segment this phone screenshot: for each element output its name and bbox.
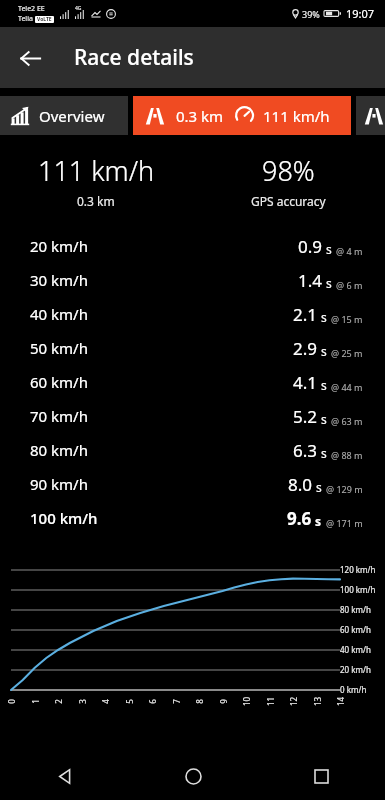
staticText: @ 6 m <box>336 279 363 291</box>
staticText: 14 <box>334 696 345 706</box>
staticText: 0.9 <box>298 235 323 258</box>
staticText: s <box>321 445 327 461</box>
staticText: s <box>326 241 332 257</box>
button[interactable]: 40 km/h <box>0 297 385 331</box>
button[interactable]: 100 km/h <box>0 501 385 535</box>
staticText: s <box>321 411 327 427</box>
button[interactable]: Overview <box>0 96 128 135</box>
staticText: 90 km/h <box>30 474 88 494</box>
staticText: 30 km/h <box>30 270 88 290</box>
button[interactable]: Back <box>8 36 52 80</box>
staticText: Telia <box>18 14 35 24</box>
staticText: 0.3 km <box>176 106 224 126</box>
staticText: 8 <box>193 696 204 706</box>
staticText: 100 km/h <box>340 584 376 595</box>
button[interactable]: Back <box>0 752 129 800</box>
staticText: @ 129 m <box>326 483 363 495</box>
staticText: @ 171 m <box>326 517 363 529</box>
staticText: 60 km/h <box>340 624 371 635</box>
staticText: 13 <box>311 696 322 706</box>
staticText: 8.0 <box>288 473 313 496</box>
staticText: 2 <box>52 696 63 706</box>
button[interactable]: 30 km/h <box>0 263 385 297</box>
staticText: 1.4 <box>298 269 323 292</box>
button[interactable]: 0.3 km <box>133 96 351 135</box>
staticText: 111 km/h <box>263 106 330 126</box>
staticText: 111 km/h <box>38 152 155 189</box>
staticText: @ 44 m <box>331 381 363 393</box>
staticText: @ 25 m <box>331 347 363 359</box>
staticText: @ 63 m <box>331 415 363 427</box>
staticText: 4G <box>75 5 82 12</box>
staticText: 11 <box>264 696 275 706</box>
staticText: 50 km/h <box>30 338 88 358</box>
staticText: 4 <box>99 696 110 706</box>
staticText: 0 <box>5 696 16 706</box>
staticText: 6 <box>146 696 157 706</box>
staticText: 5 <box>123 696 134 706</box>
staticText: Overview <box>39 106 105 126</box>
staticText: 9.6 <box>287 507 312 530</box>
staticText: 20 km/h <box>30 236 88 256</box>
staticText: 100 km/h <box>30 508 98 528</box>
staticText: 40 km/h <box>340 644 371 655</box>
staticText: 20 km/h <box>340 664 371 675</box>
button[interactable]: 80 km/h <box>0 433 385 467</box>
staticText: @ 4 m <box>336 245 363 257</box>
staticText: Race details <box>74 43 194 72</box>
staticText: @ 15 m <box>331 313 363 325</box>
staticText: s <box>321 343 327 359</box>
staticText: VoLTE <box>37 16 52 23</box>
staticText: 7 <box>170 696 181 706</box>
staticText: 98% <box>262 152 315 189</box>
button[interactable] <box>356 96 385 135</box>
staticText: 12 <box>287 696 298 706</box>
staticText: 2.1 <box>293 303 318 326</box>
staticText: 0 km/h <box>340 684 367 695</box>
staticText: 3 <box>76 696 87 706</box>
staticText: 60 km/h <box>30 372 88 392</box>
staticText: 5.2 <box>293 405 318 428</box>
staticText: 39% <box>302 8 320 20</box>
staticText: 19:07 <box>346 6 375 21</box>
button[interactable]: 90 km/h <box>0 467 385 501</box>
button[interactable]: 50 km/h <box>0 331 385 365</box>
staticText: 120 km/h <box>340 564 376 575</box>
staticText: 2.9 <box>293 337 318 360</box>
button[interactable]: Recent apps <box>257 752 385 800</box>
button[interactable]: Home <box>129 752 257 800</box>
staticText: s <box>315 513 322 529</box>
staticText: 80 km/h <box>30 440 88 460</box>
staticText: s <box>321 309 327 325</box>
staticText: 70 km/h <box>30 406 88 426</box>
staticText: 80 km/h <box>340 604 371 615</box>
staticText: s <box>321 377 327 393</box>
button[interactable]: 60 km/h <box>0 365 385 399</box>
staticText: s <box>316 479 322 495</box>
staticText: 1 <box>29 696 40 706</box>
staticText: 9 <box>217 696 228 706</box>
staticText: Tele2 EE <box>18 4 45 14</box>
staticText: GPS accuracy <box>251 193 326 209</box>
staticText: s <box>326 275 332 291</box>
staticText: 4.1 <box>293 371 318 394</box>
button[interactable]: 20 km/h <box>0 229 385 263</box>
button[interactable]: 70 km/h <box>0 399 385 433</box>
staticText: 0.3 km <box>77 193 115 209</box>
staticText: 40 km/h <box>30 304 88 324</box>
staticText: 6.3 <box>293 439 318 462</box>
staticText: @ 88 m <box>331 449 363 461</box>
staticText: 10 <box>240 696 251 706</box>
